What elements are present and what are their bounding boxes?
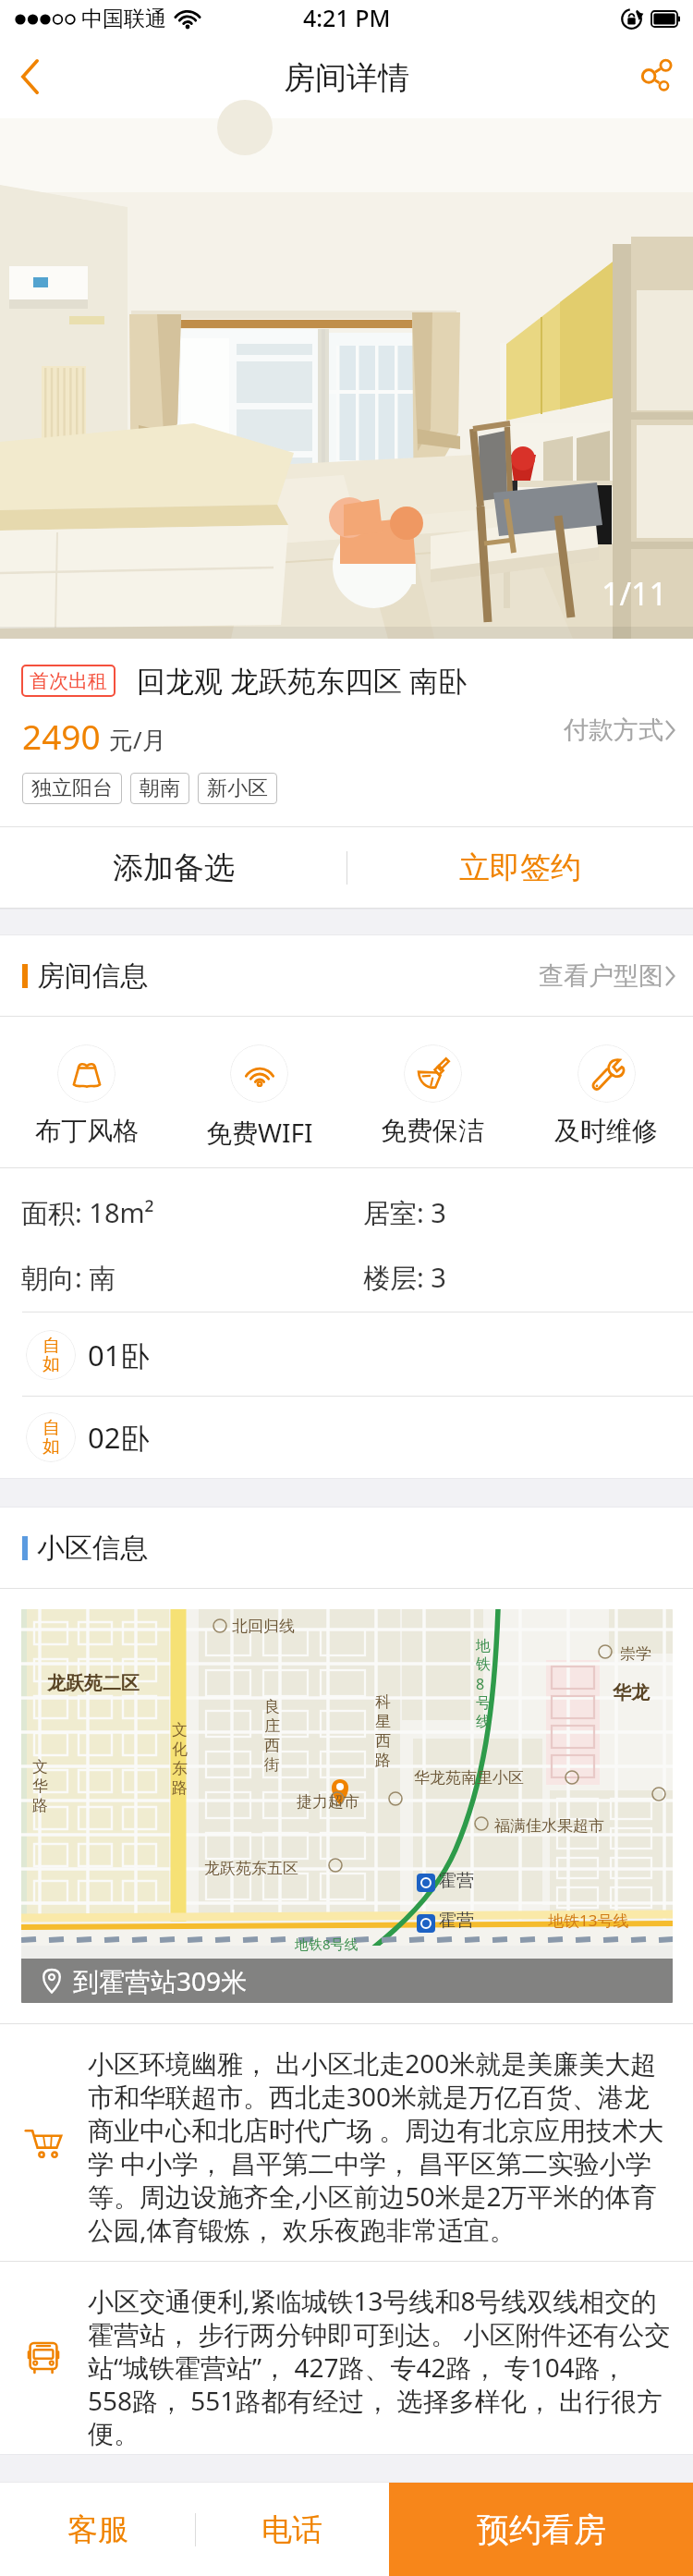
staticText: 小区交通便利,紧临城铁13号线和8号线双线相交的霍营站， 步行两分钟即可到达。 … — [88, 2283, 672, 2450]
button[interactable]: 自 如 — [0, 1397, 693, 1478]
staticText: 地铁13号线 — [548, 1910, 629, 1931]
staticText: 铁 — [476, 1655, 491, 1674]
staticText: 电话 — [261, 2510, 322, 2549]
staticText: 华 — [32, 1776, 48, 1796]
staticText: 东 — [172, 1759, 188, 1778]
staticText: 文 — [172, 1720, 188, 1740]
staticText: 新小区 — [207, 775, 268, 801]
staticText: 霍营 — [439, 1910, 474, 1932]
staticText: 免费保洁 — [381, 1115, 484, 1147]
button[interactable]: 预约看房 — [389, 2483, 693, 2576]
staticText: 房间信息 — [37, 958, 148, 994]
button[interactable]: 客服 — [0, 2483, 195, 2576]
staticText: 02卧 — [88, 1418, 150, 1457]
staticText: 预约看房 — [477, 2509, 606, 2550]
button[interactable]: 免费保洁 — [346, 1044, 519, 1147]
staticText: 庄 — [264, 1716, 280, 1736]
staticText: 添加备选 — [113, 848, 235, 887]
staticText: 龙跃苑二区 — [47, 1672, 140, 1695]
staticText: 立即签约 — [459, 848, 581, 887]
staticText: 付款方式 — [564, 714, 663, 746]
staticText: 良 — [264, 1697, 280, 1716]
staticText: 回龙观 龙跃苑东四区 南卧 — [137, 661, 468, 700]
button[interactable]: Back — [0, 37, 81, 118]
button[interactable]: 布丁风格 — [0, 1044, 173, 1147]
button[interactable]: 免费WIFI — [173, 1044, 346, 1150]
staticText: 4:21 PM — [303, 2, 391, 33]
staticText: 首次出租 — [30, 669, 107, 693]
staticText: 路 — [32, 1796, 48, 1815]
staticText: 捷力超市 — [297, 1792, 359, 1812]
staticText: 1/11 — [602, 572, 667, 615]
staticText: 地 — [476, 1637, 491, 1655]
staticText: 路 — [375, 1751, 391, 1770]
staticText: 元/月 — [109, 723, 166, 756]
staticText: 朝南 — [140, 775, 180, 801]
staticText: 文 — [32, 1757, 48, 1776]
button[interactable]: 自 如 — [0, 1312, 693, 1397]
staticText: 霍营 — [439, 1870, 474, 1892]
staticText: 北回归线 — [232, 1617, 295, 1636]
staticText: 8 — [476, 1674, 485, 1694]
staticText: 免费WIFI — [206, 1115, 313, 1150]
staticText: 小区信息 — [37, 1531, 148, 1566]
staticText: 2490 — [22, 713, 101, 759]
button[interactable]: 及时维修 — [519, 1044, 693, 1147]
staticText: 华龙苑南里小区 — [414, 1768, 524, 1788]
staticText: 朝向: 南 — [21, 1259, 116, 1296]
button[interactable]: 付款方式 — [564, 714, 675, 746]
button[interactable]: Share — [612, 37, 693, 118]
staticText: 华龙 — [613, 1681, 650, 1704]
staticText: 化 — [172, 1740, 188, 1759]
staticText: 龙跃苑东五区 — [204, 1859, 298, 1878]
staticText: 线 — [476, 1713, 491, 1731]
staticText: 福满佳水果超市 — [494, 1816, 604, 1836]
staticText: 独立阳台 — [31, 775, 113, 801]
staticText: 西 — [375, 1731, 391, 1751]
staticText: 号 — [476, 1694, 491, 1713]
staticText: 到霍营站309米 — [73, 1963, 248, 1998]
staticText: 布丁风格 — [35, 1115, 139, 1147]
staticText: 中国联通 — [81, 6, 166, 32]
button[interactable]: 添加备选 — [0, 827, 346, 909]
staticText: 自 如 — [43, 1417, 60, 1458]
staticText: 崇学 — [620, 1644, 651, 1664]
staticText: 01卧 — [88, 1336, 150, 1374]
button[interactable]: 查看户型图 — [539, 960, 675, 992]
staticText: 西 — [264, 1736, 280, 1755]
staticText: 科 — [375, 1692, 391, 1712]
staticText: 小区环境幽雅， 出小区北走200米就是美廉美大超市和华联超市。西北走300米就是… — [88, 2045, 672, 2247]
button[interactable]: 电话 — [195, 2483, 389, 2576]
button[interactable]: 立即签约 — [346, 827, 693, 909]
staticText: 面积: 18m² — [21, 1194, 154, 1231]
staticText: 自 如 — [43, 1335, 60, 1375]
staticText: 房间详情 — [284, 58, 409, 98]
staticText: 地铁8号线 — [295, 1935, 359, 1953]
staticText: 及时维修 — [554, 1115, 658, 1147]
staticText: 星 — [375, 1712, 391, 1731]
staticText: 客服 — [67, 2510, 128, 2549]
staticText: 查看户型图 — [539, 960, 663, 992]
staticText: 楼层: 3 — [363, 1259, 446, 1296]
staticText: 居室: 3 — [363, 1194, 446, 1231]
staticText: 路 — [172, 1778, 188, 1798]
staticText: 街 — [264, 1755, 280, 1775]
